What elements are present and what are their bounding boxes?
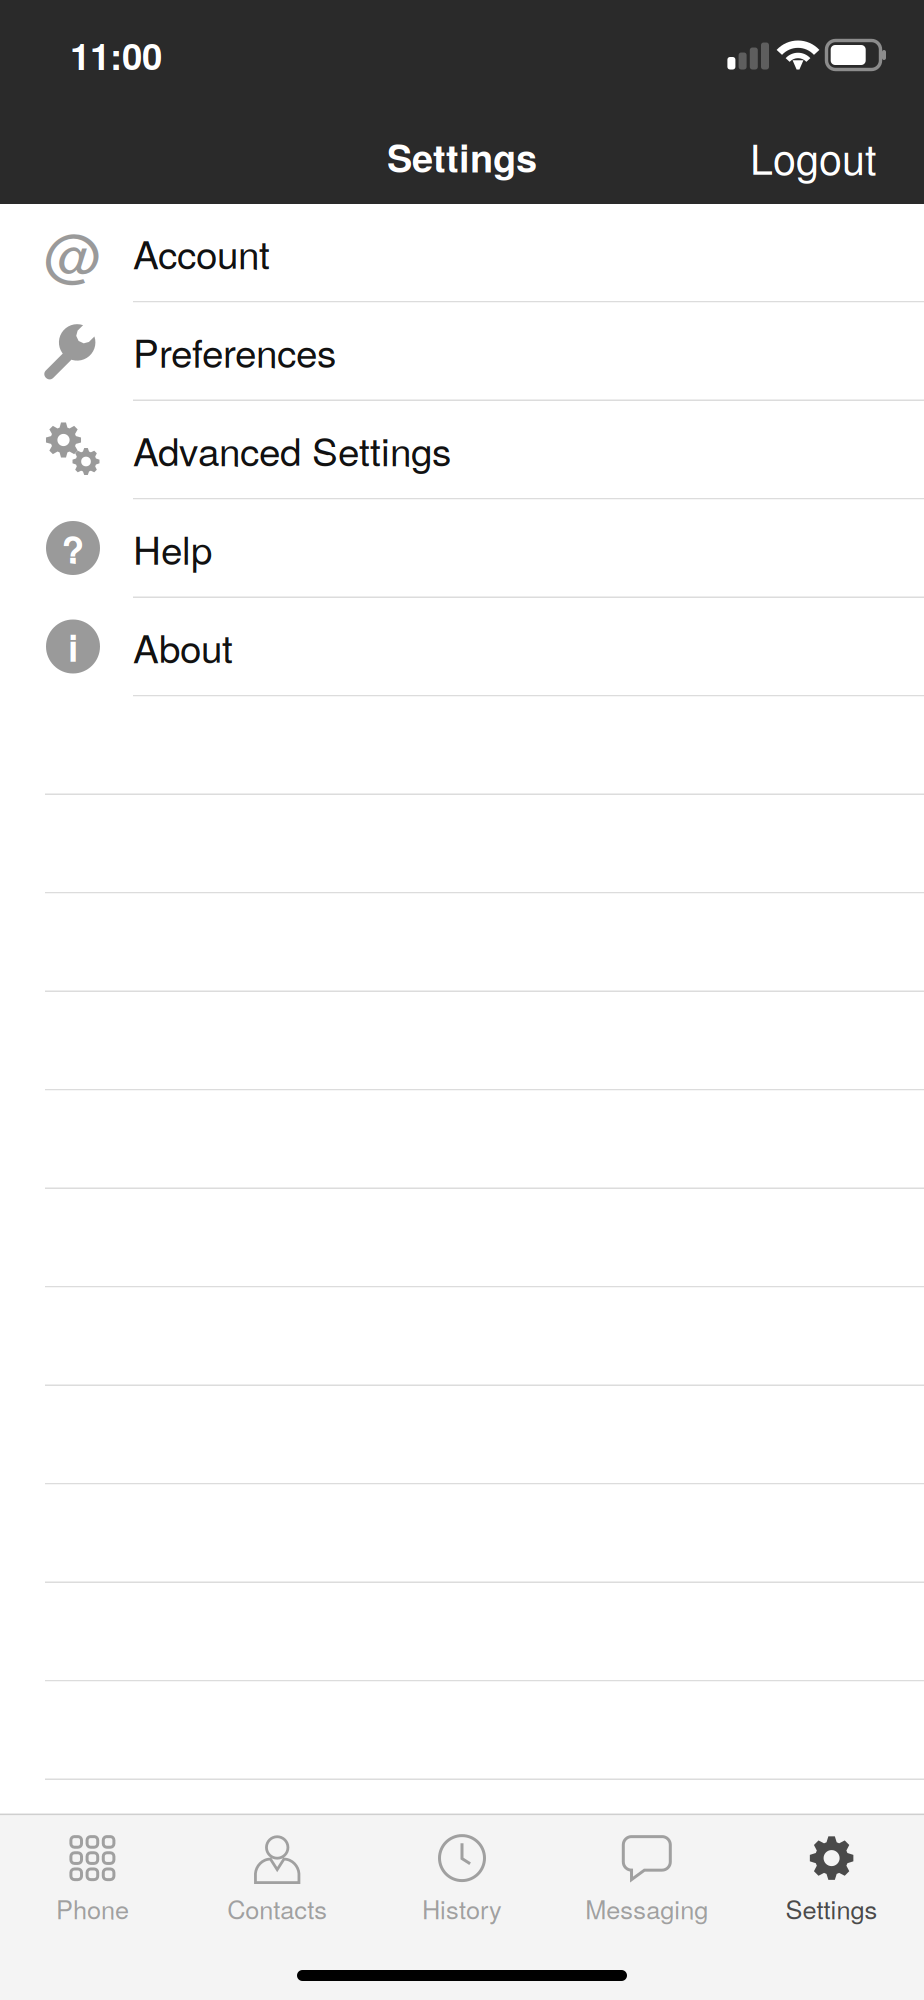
- staticText: Logout: [750, 127, 876, 187]
- staticText: @: [44, 211, 102, 293]
- staticText: Settings: [387, 130, 537, 184]
- button[interactable]: Phone: [0, 1815, 185, 1933]
- button[interactable]: ?: [0, 499, 924, 598]
- staticText: History: [422, 1890, 502, 1926]
- button[interactable]: Preferences: [0, 302, 924, 401]
- button[interactable]: Settings: [739, 1815, 924, 1933]
- button[interactable]: Advanced Settings: [0, 401, 924, 499]
- staticText: ?: [61, 521, 84, 575]
- staticText: Help: [133, 520, 212, 576]
- staticText: 11:00: [70, 29, 162, 81]
- button[interactable]: Contacts: [185, 1815, 370, 1933]
- staticText: Contacts: [227, 1890, 327, 1926]
- button[interactable]: i: [0, 598, 924, 696]
- staticText: Preferences: [133, 323, 336, 379]
- button[interactable]: @: [0, 204, 924, 302]
- staticText: i: [68, 620, 78, 673]
- staticText: Phone: [56, 1890, 129, 1926]
- staticText: About: [133, 619, 233, 674]
- staticText: Account: [133, 225, 270, 280]
- staticText: Settings: [786, 1890, 878, 1926]
- button[interactable]: Logout: [726, 113, 924, 201]
- button[interactable]: Messaging: [554, 1815, 739, 1933]
- staticText: Messaging: [585, 1890, 708, 1926]
- staticText: Advanced Settings: [133, 422, 451, 477]
- button[interactable]: History: [370, 1815, 554, 1933]
